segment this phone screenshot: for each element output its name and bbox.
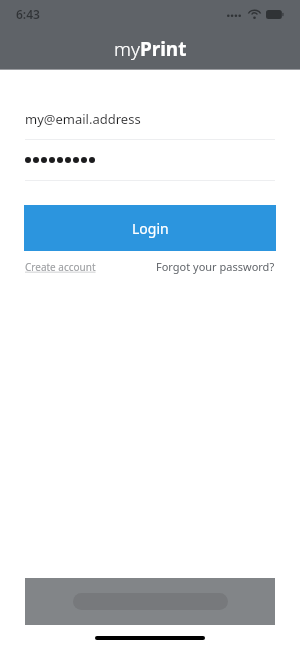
staticText: 6:43: [16, 6, 40, 22]
staticText: my@email.address: [25, 110, 141, 128]
staticText: Login: [132, 219, 169, 238]
button[interactable]: my@email.address: [25, 110, 275, 128]
staticText: Create account: [25, 260, 96, 274]
button[interactable]: Login: [24, 205, 276, 251]
button[interactable]: [25, 152, 275, 168]
button[interactable]: Advertisement: [25, 578, 275, 625]
staticText: Forgot your password?: [156, 259, 275, 274]
staticText: myPrint: [114, 36, 187, 62]
button[interactable]: Create account: [25, 260, 96, 274]
button[interactable]: Forgot your password?: [156, 259, 275, 274]
